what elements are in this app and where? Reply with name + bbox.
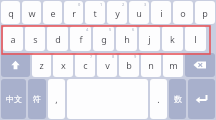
button[interactable]: Backspace: [185, 53, 215, 77]
button[interactable]: 8: [97, 53, 117, 77]
staticText: p: [202, 7, 208, 19]
button[interactable]: k: [162, 26, 183, 51]
staticText: c: [83, 59, 88, 71]
staticText: v: [105, 59, 110, 71]
staticText: n: [148, 59, 154, 71]
staticText: u: [136, 7, 142, 19]
staticText: z: [39, 59, 44, 71]
button[interactable]: 7: [75, 53, 95, 77]
staticText: 8: [112, 54, 115, 59]
button[interactable]: Enter: [188, 79, 215, 119]
button[interactable]: w: [22, 1, 41, 24]
button[interactable]: e: [43, 1, 62, 24]
button[interactable]: .: [150, 79, 167, 119]
button[interactable]: 2: [107, 1, 127, 24]
staticText: 9: [134, 54, 137, 59]
staticText: o: [180, 7, 186, 19]
button[interactable]: j: [139, 26, 160, 51]
staticText: k: [170, 33, 175, 45]
staticText: a: [10, 33, 16, 45]
button[interactable]: 中文: [1, 79, 26, 119]
staticText: f: [79, 33, 83, 45]
staticText: t: [93, 7, 97, 19]
button[interactable]: a: [3, 26, 23, 51]
staticText: b: [126, 59, 132, 71]
button[interactable]: p: [195, 1, 215, 24]
staticText: j: [148, 33, 151, 45]
staticText: 中文: [6, 94, 22, 104]
staticText: l: [194, 33, 197, 45]
staticText: ,: [55, 93, 58, 105]
staticText: 1: [100, 2, 103, 7]
button[interactable]: z: [32, 53, 51, 77]
staticText: i: [160, 7, 163, 19]
staticText: 符: [33, 94, 41, 104]
staticText: .: [157, 93, 160, 105]
staticText: g: [101, 33, 107, 45]
button[interactable]: 4: [70, 26, 91, 51]
button[interactable]: 符: [28, 79, 46, 119]
button[interactable]: i: [151, 1, 171, 24]
button[interactable]: 1: [85, 1, 105, 24]
staticText: r: [72, 7, 76, 19]
button[interactable]: n: [141, 53, 161, 77]
button[interactable]: 0: [64, 1, 83, 24]
staticText: d: [55, 33, 61, 45]
staticText: 6: [132, 27, 135, 32]
button[interactable]: 5: [93, 26, 114, 51]
button[interactable]: x: [53, 53, 73, 77]
button[interactable]: 9: [119, 53, 139, 77]
staticText: 0: [78, 2, 81, 7]
staticText: 2: [122, 2, 125, 7]
button[interactable]: Shift: [1, 53, 30, 77]
staticText: y: [115, 7, 120, 19]
button[interactable]: 3: [129, 1, 149, 24]
staticText: m: [169, 59, 178, 71]
button[interactable]: 6: [116, 26, 137, 51]
staticText: 5: [109, 27, 112, 32]
staticText: 7: [90, 54, 93, 59]
button[interactable]: s: [25, 26, 45, 51]
staticText: 3: [144, 2, 147, 7]
staticText: h: [124, 33, 130, 45]
button[interactable]: l: [185, 26, 206, 51]
staticText: e: [50, 7, 56, 19]
button[interactable]: q: [1, 1, 20, 24]
staticText: s: [33, 33, 38, 45]
button[interactable]: 数: [169, 79, 186, 119]
staticText: 4: [86, 27, 89, 32]
button[interactable]: d: [47, 26, 68, 51]
button[interactable]: ,: [48, 79, 65, 119]
button[interactable]: m: [163, 53, 183, 77]
staticText: 数: [174, 94, 182, 104]
staticText: x: [61, 59, 66, 71]
staticText: w: [28, 7, 36, 19]
button[interactable]: o: [173, 1, 193, 24]
staticText: q: [8, 7, 14, 19]
